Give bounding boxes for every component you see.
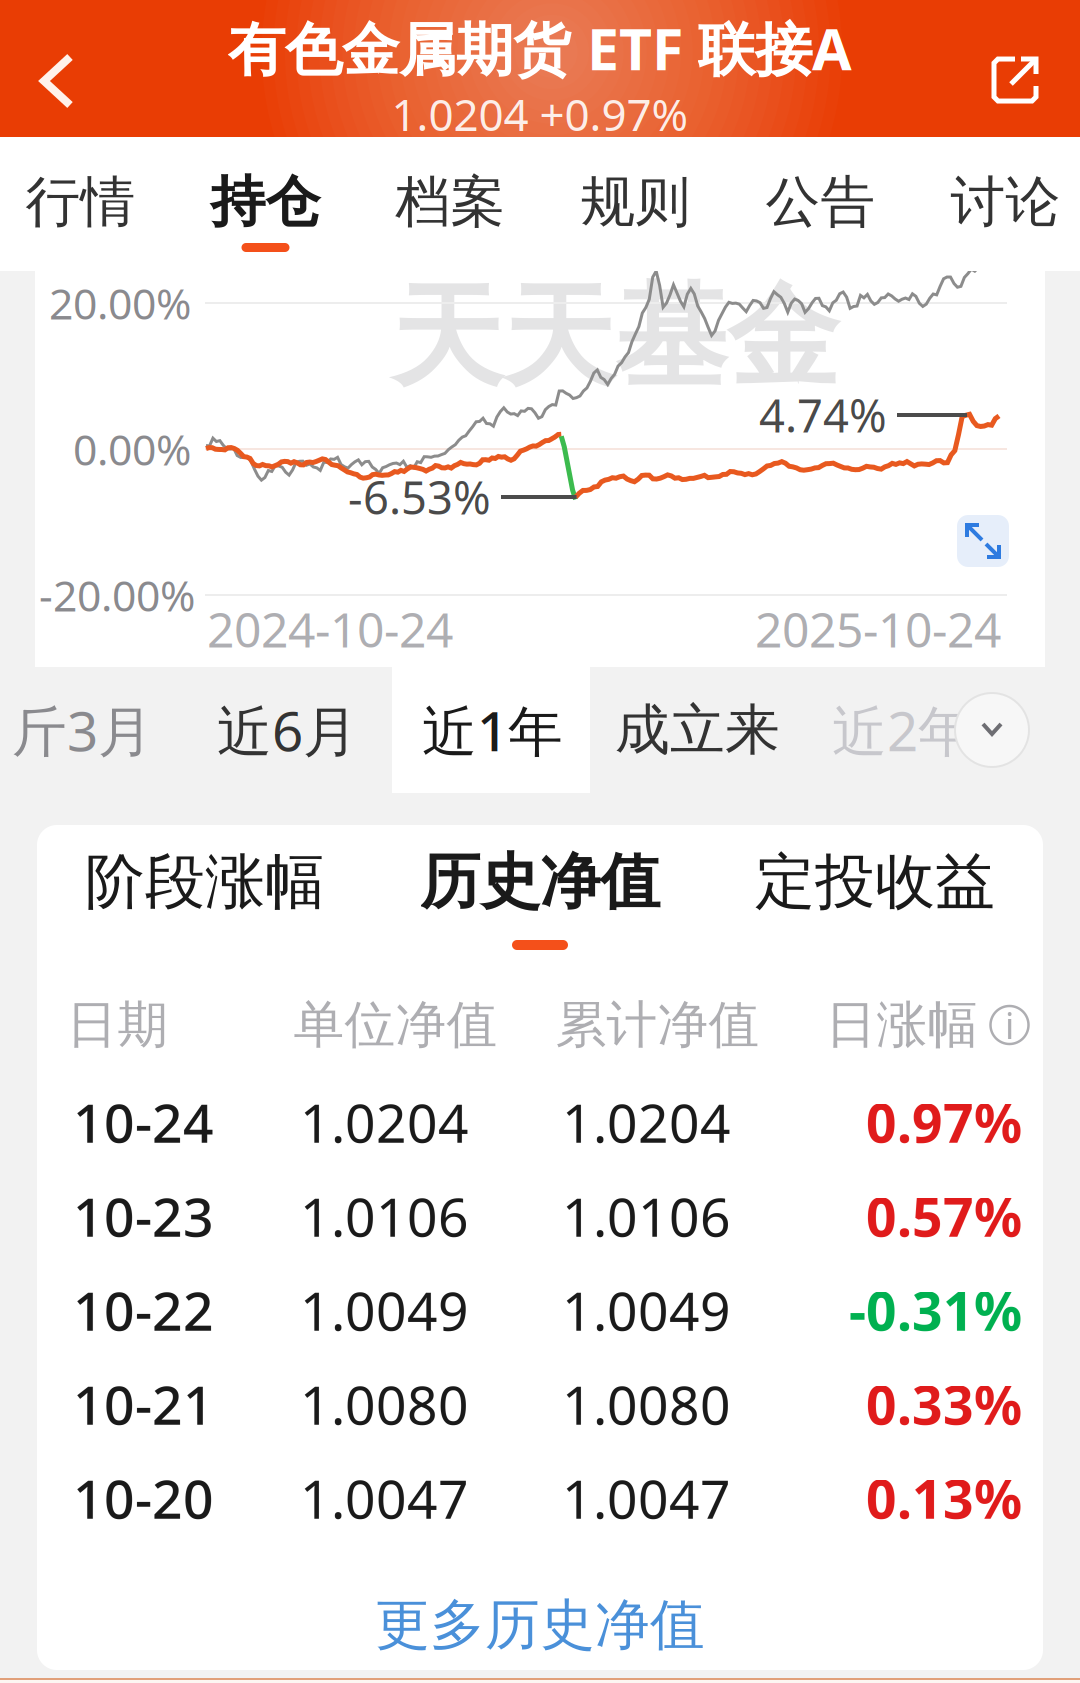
button[interactable]: 规则 xyxy=(543,137,728,271)
staticText: i xyxy=(1005,1001,1014,1049)
staticText: 定投收益 xyxy=(755,845,995,919)
button[interactable]: 阶段涨幅 xyxy=(37,850,372,954)
staticText: 档案 xyxy=(395,168,505,235)
staticText: 更多历史净值 xyxy=(375,1591,705,1658)
staticText: 公告 xyxy=(765,168,875,235)
button[interactable]: 讨论 xyxy=(913,137,1080,271)
staticText: 斤3月 xyxy=(12,694,153,766)
staticText: 天天基金 xyxy=(391,269,839,407)
button[interactable]: 定投收益 xyxy=(707,850,1042,954)
staticText: 1.0204 xyxy=(300,1087,469,1157)
button[interactable]: 成立来 xyxy=(595,667,800,793)
staticText: 日涨幅 xyxy=(825,994,978,1056)
button[interactable]: Back xyxy=(0,0,124,137)
staticText: 20.00% xyxy=(49,275,191,331)
staticText: 4.74% xyxy=(759,385,887,445)
button[interactable]: 近1年 xyxy=(390,667,595,793)
staticText: 2024-10-24 xyxy=(207,597,453,661)
staticText: 1.0106 xyxy=(562,1181,731,1251)
staticText: 1.0080 xyxy=(562,1369,731,1439)
staticText: 1.0204 +0.97% xyxy=(391,85,688,143)
staticText: 0.13% xyxy=(866,1463,1022,1533)
staticText: 近2年 xyxy=(832,694,973,766)
staticText: 10-21 xyxy=(73,1369,214,1439)
staticText: 10-24 xyxy=(73,1087,214,1157)
staticText: 10-23 xyxy=(73,1181,214,1251)
button[interactable]: 历史净值 xyxy=(372,850,707,954)
button[interactable]: 近6月 xyxy=(185,667,390,793)
staticText: 1.0080 xyxy=(300,1369,469,1439)
staticText: 持仓 xyxy=(210,168,320,235)
staticText: 成立来 xyxy=(615,696,780,763)
staticText: 规则 xyxy=(580,168,690,235)
staticText: 0.57% xyxy=(866,1181,1022,1251)
staticText: 阶段涨幅 xyxy=(85,845,325,919)
staticText: 日期 xyxy=(66,994,168,1056)
staticText: 近1年 xyxy=(422,694,563,766)
staticText: 1.0047 xyxy=(300,1463,469,1533)
staticText: 行情 xyxy=(25,168,135,235)
staticText: 单位净值 xyxy=(293,994,497,1056)
staticText: -20.00% xyxy=(39,567,195,623)
staticText: 1.0049 xyxy=(562,1275,731,1345)
staticText: 有色金属期货 ETF 联接A xyxy=(228,10,852,86)
staticText: 0.97% xyxy=(866,1087,1022,1157)
staticText: -0.31% xyxy=(849,1275,1022,1345)
button[interactable]: 公告 xyxy=(728,137,913,271)
staticText: 1.0204 xyxy=(562,1087,731,1157)
staticText: 0.00% xyxy=(73,421,191,477)
staticText: 累计净值 xyxy=(555,994,759,1056)
staticText: 近6月 xyxy=(217,694,358,766)
button[interactable]: 持仓 xyxy=(173,137,358,271)
button[interactable]: 近2年 xyxy=(800,667,1005,793)
button[interactable]: More periods xyxy=(955,693,1029,767)
button[interactable]: 行情 xyxy=(0,137,173,271)
staticText: 10-22 xyxy=(73,1275,214,1345)
staticText: 0.33% xyxy=(866,1369,1022,1439)
button[interactable]: 斤3月 xyxy=(0,667,185,793)
staticText: 2025-10-24 xyxy=(755,597,1001,661)
staticText: 历史净值 xyxy=(420,845,660,919)
button[interactable]: 更多历史净值 xyxy=(37,1575,1043,1675)
staticText: 讨论 xyxy=(950,168,1060,235)
staticText: 1.0049 xyxy=(300,1275,469,1345)
button[interactable]: Share xyxy=(962,0,1062,137)
staticText: 1.0047 xyxy=(562,1463,731,1533)
button[interactable]: 档案 xyxy=(358,137,543,271)
staticText: 1.0106 xyxy=(300,1181,469,1251)
staticText: 10-20 xyxy=(73,1463,214,1533)
staticText: -6.53% xyxy=(348,467,491,527)
button[interactable]: Expand chart xyxy=(957,515,1009,567)
